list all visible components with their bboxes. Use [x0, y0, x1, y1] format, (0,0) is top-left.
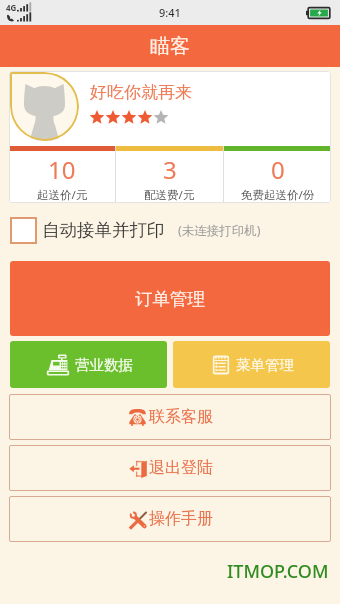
staticText: 退出登陆	[149, 458, 213, 478]
staticText: 菜单管理	[236, 356, 294, 374]
staticText: 订单管理	[135, 288, 205, 310]
button[interactable]: 营业数据	[10, 341, 167, 388]
staticText: ITMOP.COM	[227, 559, 329, 584]
button[interactable]: 订单管理	[10, 261, 330, 336]
staticText: 4G	[6, 2, 17, 13]
staticText: 操作手册	[149, 509, 213, 529]
button[interactable]: 退出登陆	[9, 445, 331, 491]
staticText: 瞄客	[150, 34, 190, 59]
staticText: 起送价/元	[37, 187, 88, 203]
staticText: 3	[163, 153, 177, 186]
staticText: 0	[271, 153, 285, 186]
staticText: (未连接打印机)	[178, 222, 261, 239]
staticText: 好吃你就再来	[90, 82, 192, 103]
button[interactable]: 菜单管理	[173, 341, 330, 388]
button[interactable]: Auto accept and print	[10, 217, 37, 244]
staticText: 营业数据	[75, 356, 133, 374]
staticText: 10	[48, 153, 76, 186]
button[interactable]: 操作手册	[9, 496, 331, 542]
staticText: 9:41	[159, 5, 181, 20]
staticText: 免费起送价/份	[241, 187, 315, 203]
staticText: 配送费/元	[144, 187, 195, 203]
staticText: 自动接单并打印	[42, 219, 165, 241]
staticText: 联系客服	[149, 407, 213, 427]
button[interactable]: 联系客服	[9, 394, 331, 440]
